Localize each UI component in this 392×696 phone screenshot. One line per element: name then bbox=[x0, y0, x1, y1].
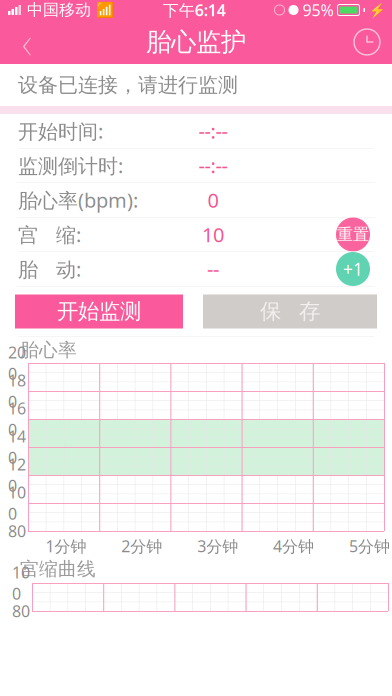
button[interactable]: 历史记录 bbox=[342, 20, 392, 64]
staticText: 监测倒计时: bbox=[18, 152, 123, 179]
staticText: 120 bbox=[8, 454, 26, 496]
staticText: 胎心监护 bbox=[146, 26, 246, 57]
staticText: 3分钟 bbox=[197, 535, 238, 557]
button[interactable]: 开始监测 bbox=[15, 294, 183, 328]
staticText: +1 bbox=[343, 257, 363, 280]
staticText: 10 bbox=[202, 221, 224, 248]
staticText: 80 bbox=[8, 520, 26, 542]
staticText: 180 bbox=[8, 370, 26, 412]
staticText: 100 bbox=[8, 482, 26, 524]
staticText: -- bbox=[207, 256, 219, 282]
staticText: 宫缩曲线 bbox=[20, 557, 96, 580]
staticText: 160 bbox=[8, 398, 26, 440]
staticText: 胎心率 bbox=[20, 338, 77, 361]
staticText: 2分钟 bbox=[121, 535, 162, 557]
button[interactable]: 返回 bbox=[0, 20, 54, 64]
staticText: 80 bbox=[12, 600, 30, 622]
staticText: 5分钟 bbox=[349, 535, 390, 557]
staticText: 宫 缩: bbox=[18, 221, 81, 248]
staticText: 保 存 bbox=[260, 298, 320, 325]
button[interactable]: 保 存 bbox=[203, 294, 377, 328]
staticText: 100 bbox=[12, 562, 30, 604]
staticText: 中国移动 bbox=[27, 0, 91, 20]
staticText: 0 bbox=[207, 187, 218, 213]
staticText: 95% bbox=[302, 0, 333, 21]
button[interactable]: 重置 bbox=[336, 217, 370, 251]
staticText: 重置 bbox=[337, 225, 369, 244]
staticText: 开始监测 bbox=[57, 298, 141, 325]
staticText: --:-- bbox=[198, 152, 227, 179]
staticText: 140 bbox=[8, 426, 26, 468]
staticText: 胎 动: bbox=[18, 256, 81, 282]
staticText: --:-- bbox=[198, 118, 227, 144]
staticText: 1分钟 bbox=[45, 535, 86, 557]
staticText: 200 bbox=[8, 342, 26, 384]
staticText: ‹ bbox=[22, 12, 32, 72]
staticText: 📶 bbox=[96, 2, 114, 18]
staticText: ⚡ bbox=[369, 2, 386, 18]
staticText: 开始时间: bbox=[18, 118, 103, 144]
staticText: 下午6:14 bbox=[163, 0, 226, 21]
staticText: 4分钟 bbox=[273, 535, 314, 557]
button[interactable]: +1 bbox=[336, 252, 370, 286]
staticText: 胎心率(bpm): bbox=[18, 187, 138, 213]
staticText: 设备已连接，请进行监测 bbox=[18, 73, 238, 97]
